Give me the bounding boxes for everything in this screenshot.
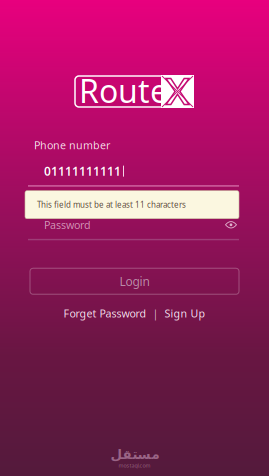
staticText: Phone number — [34, 138, 110, 152]
staticText: Route — [79, 69, 168, 112]
staticText: 01111111111 — [44, 163, 121, 179]
button[interactable]: Sign Up — [164, 306, 205, 320]
staticText: Forget Password — [63, 306, 146, 320]
button[interactable]: Show password — [225, 220, 239, 229]
staticText: مستقل — [110, 447, 159, 462]
staticText: | — [146, 306, 164, 320]
staticText: mostaql.com — [118, 462, 150, 469]
staticText: Login — [119, 273, 149, 289]
staticText: This field must be at least 11 character… — [37, 199, 186, 210]
staticText: Sign Up — [164, 306, 205, 320]
button[interactable]: Forget Password — [63, 306, 146, 320]
button[interactable]: Login — [30, 268, 239, 294]
staticText: Password — [44, 218, 91, 232]
